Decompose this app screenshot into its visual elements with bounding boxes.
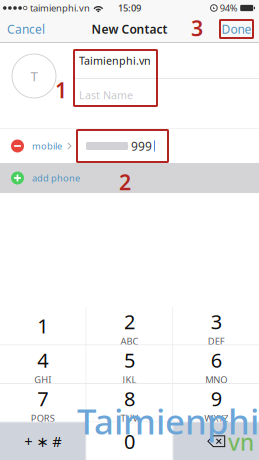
button[interactable]: add phone xyxy=(0,163,259,193)
staticText: 1 xyxy=(55,76,67,104)
button[interactable]: mobile xyxy=(0,129,259,163)
staticText: T xyxy=(30,67,37,85)
staticText: 7 xyxy=(37,385,48,412)
button[interactable]: 5 xyxy=(86,343,172,386)
staticText: Done xyxy=(221,21,251,37)
staticText: JKL xyxy=(122,373,136,386)
button[interactable]: Taimienphi.vn xyxy=(74,43,259,78)
staticText: 9 xyxy=(211,385,222,412)
button[interactable]: 4 xyxy=(0,343,86,386)
staticText: PQRS xyxy=(31,412,55,424)
staticText: 0 xyxy=(124,428,135,455)
staticText: DEF xyxy=(208,335,225,347)
staticText: GHI xyxy=(34,373,51,386)
staticText: taimienphi.vn xyxy=(30,2,90,14)
staticText: ABC xyxy=(120,335,138,347)
staticText: 999 xyxy=(131,138,152,154)
staticText: Cancel xyxy=(7,21,45,37)
staticText: + ∗ # xyxy=(24,431,61,451)
staticText: 8 xyxy=(124,385,135,412)
staticText: 94% xyxy=(220,2,238,14)
button[interactable]: 8 xyxy=(86,381,172,424)
button[interactable]: 7 xyxy=(0,381,86,424)
staticText: WXYZ xyxy=(204,412,228,424)
staticText: MNO xyxy=(205,373,227,386)
staticText: 4 xyxy=(37,347,48,373)
button[interactable]: 9 xyxy=(173,381,259,424)
staticText: 2 xyxy=(124,308,135,335)
button[interactable]: Last Name xyxy=(74,79,259,111)
button[interactable]: + ∗ # xyxy=(0,422,86,460)
staticText: 2 xyxy=(119,168,131,196)
button[interactable]: 3 xyxy=(173,304,259,347)
button[interactable]: Done xyxy=(220,20,253,38)
staticText: 6 xyxy=(211,347,222,373)
staticText: 15:09 xyxy=(118,2,141,14)
staticText: add phone xyxy=(32,172,80,184)
staticText: vn xyxy=(228,427,254,457)
staticText: 1 xyxy=(37,312,48,339)
staticText: Taimienphi xyxy=(77,398,259,444)
button[interactable]: 1 xyxy=(0,307,86,345)
staticText: 3 xyxy=(191,14,203,42)
button[interactable]: 2 xyxy=(86,304,172,347)
button[interactable]: Cancel xyxy=(0,17,55,41)
staticText: mobile xyxy=(32,140,62,152)
staticText: 3 xyxy=(211,308,222,335)
staticText: Last Name xyxy=(79,88,133,102)
staticText: Taimienphi.vn xyxy=(79,53,151,68)
button[interactable]: Delete xyxy=(173,422,259,460)
button[interactable]: 6 xyxy=(173,343,259,386)
staticText: TUV xyxy=(120,412,138,424)
button[interactable]: 0 xyxy=(86,422,172,460)
staticText: New Contact xyxy=(91,21,167,37)
staticText: 5 xyxy=(124,347,135,373)
